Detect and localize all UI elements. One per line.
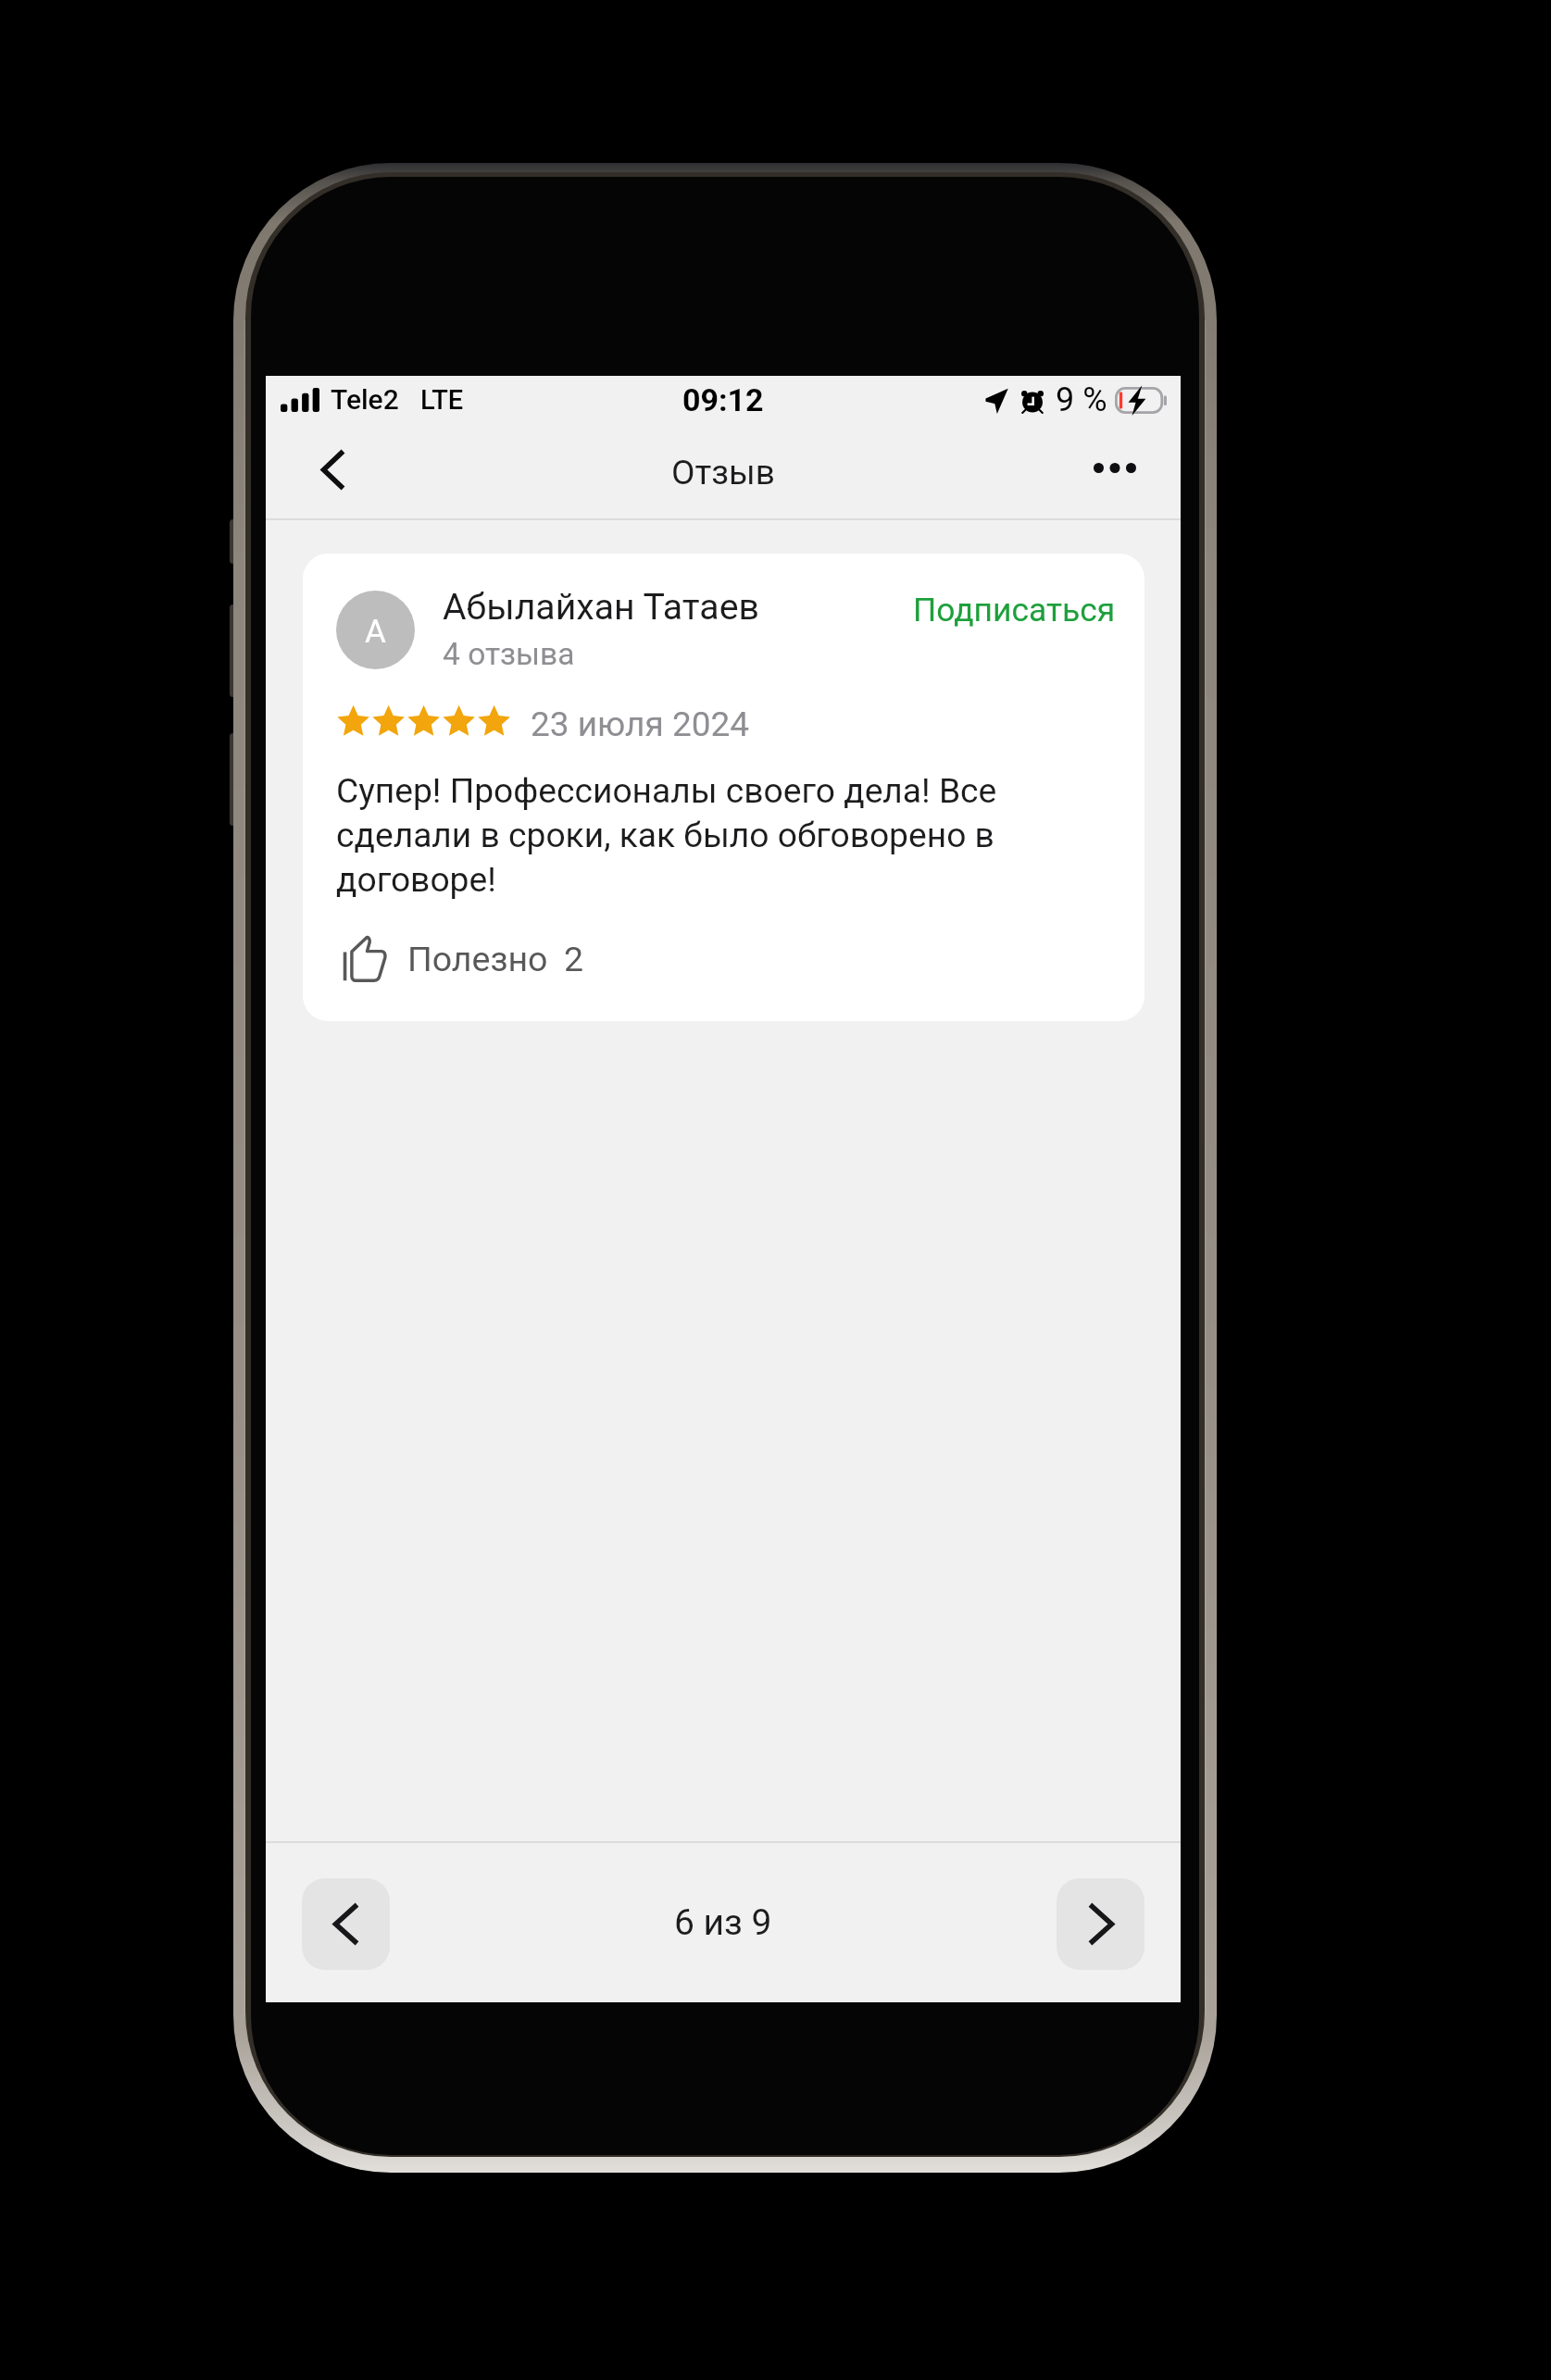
- staticText: 23 июля 2024: [531, 704, 750, 744]
- button[interactable]: More options: [1060, 427, 1181, 519]
- button[interactable]: Next review: [1057, 1878, 1144, 1970]
- button[interactable]: Подписаться: [906, 583, 1123, 636]
- staticText: LTE: [420, 384, 464, 416]
- button[interactable]: A: [303, 554, 1144, 1021]
- staticText: Абылайхан Татаев: [443, 586, 759, 629]
- button[interactable]: Полезно: [333, 929, 599, 989]
- staticText: Подписаться: [913, 591, 1116, 629]
- staticText: 6 из 9: [674, 1901, 772, 1944]
- staticText: 09:12: [682, 381, 764, 418]
- staticText: Отзыв: [671, 453, 775, 492]
- staticText: 2: [564, 939, 584, 979]
- staticText: A: [365, 613, 386, 651]
- button[interactable]: Back: [266, 427, 395, 519]
- staticText: 4 отзыва: [443, 636, 575, 672]
- staticText: Tele2: [331, 383, 399, 416]
- staticText: Супер! Профессионалы своего дела! Все сд…: [336, 770, 997, 900]
- staticText: Полезно: [407, 939, 548, 979]
- button[interactable]: Previous review: [302, 1878, 390, 1970]
- staticText: 9 %: [1056, 380, 1107, 419]
